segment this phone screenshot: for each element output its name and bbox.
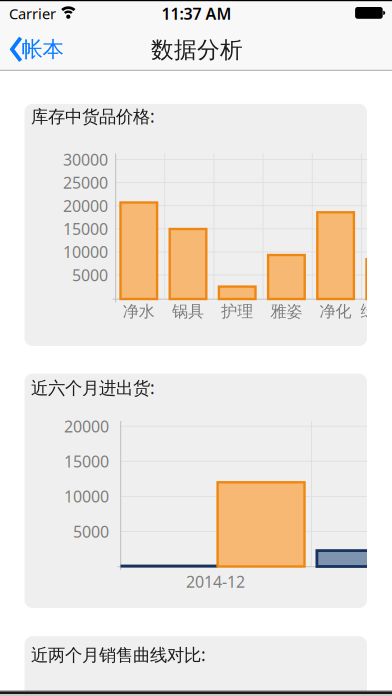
staticText: 库存中货品价格:	[31, 104, 155, 127]
staticText: 10000	[63, 241, 108, 262]
staticText: 15000	[64, 451, 109, 472]
staticText: 20000	[63, 195, 108, 216]
button[interactable]: 帐本	[6, 32, 70, 66]
staticText: 近两个月销售曲线对比:	[31, 643, 206, 666]
staticText: 30000	[63, 149, 108, 170]
staticText: 5000	[72, 264, 108, 286]
staticText: 25000	[63, 172, 108, 193]
staticText: 净水	[123, 302, 155, 321]
staticText: 数据分析	[151, 36, 243, 64]
staticText: 11:37 AM	[161, 3, 231, 24]
staticText: 近六个月进出货:	[31, 376, 155, 399]
staticText: 绿	[360, 301, 377, 322]
staticText: 帐本	[21, 36, 63, 62]
staticText: 护理	[221, 302, 253, 321]
staticText: 2014-12	[186, 571, 245, 592]
staticText: 雅姿	[270, 302, 302, 321]
staticText: 5000	[73, 521, 109, 542]
staticText: 锅具	[172, 302, 204, 321]
staticText: 20000	[64, 416, 109, 437]
staticText: 10000	[64, 486, 109, 507]
staticText: 净化	[320, 302, 352, 321]
staticText: 15000	[63, 218, 108, 239]
staticText: Carrier	[9, 4, 56, 23]
